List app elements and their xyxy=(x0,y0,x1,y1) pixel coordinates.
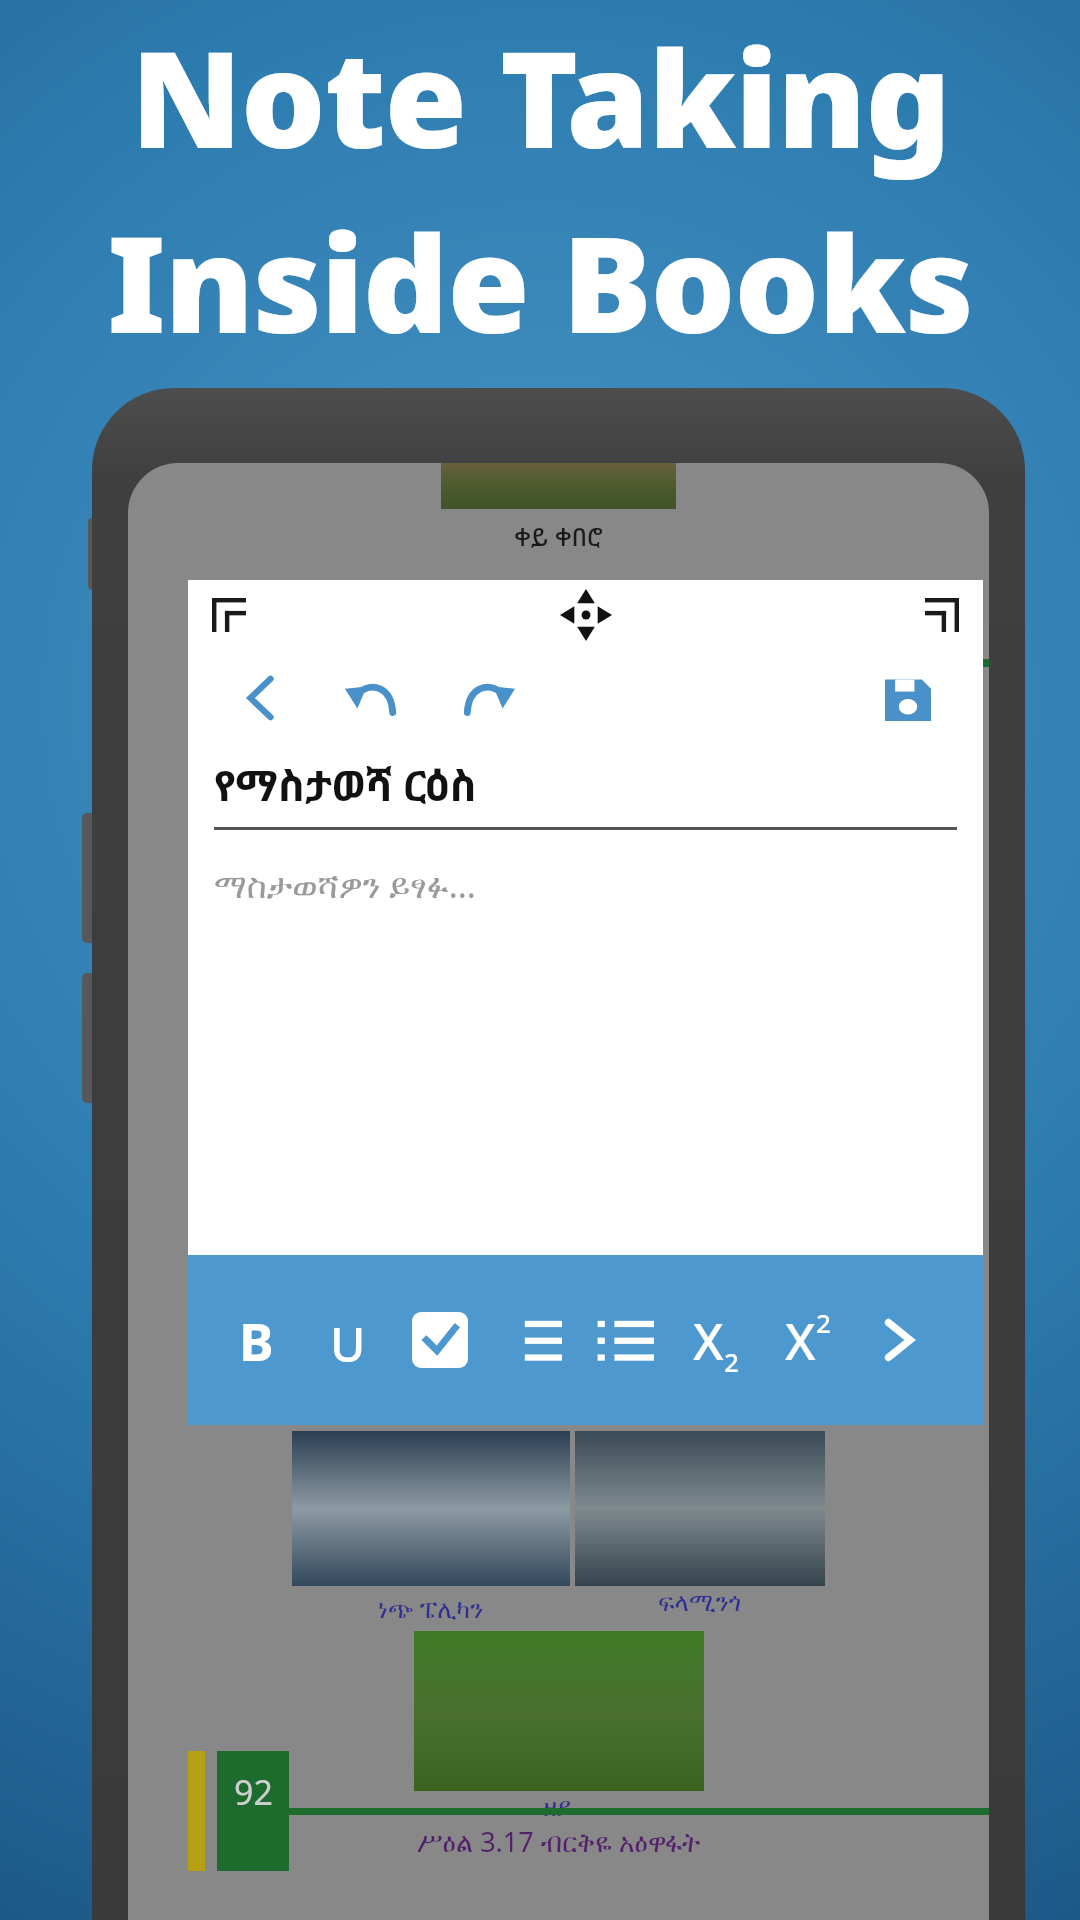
staticText: ዘይ xyxy=(543,1795,574,1821)
staticText: ሥዕል 3.17 ብርቅዬ አዕዋፋት xyxy=(417,1823,701,1860)
staticText: የማስታወሻ ርዕስ xyxy=(214,756,477,813)
staticText: Note Taking xyxy=(131,6,950,187)
button[interactable]: Undo xyxy=(330,655,416,741)
staticText: X xyxy=(785,1307,816,1373)
staticText: X xyxy=(693,1307,724,1373)
staticText: ማስታወሻዎን ይፃፉ... xyxy=(214,862,476,908)
button[interactable]: Checklist xyxy=(394,1255,486,1425)
staticText: ፍላሚንጎ xyxy=(658,1591,742,1616)
staticText: 2 xyxy=(724,1344,739,1379)
button[interactable]: Subscript xyxy=(670,1255,762,1425)
button[interactable]: Underline xyxy=(302,1255,394,1425)
staticText: ቀይ ቀበሮ xyxy=(514,519,603,553)
staticText: Inside Books xyxy=(107,191,973,372)
button[interactable]: Superscript xyxy=(762,1255,854,1425)
staticText: 2 xyxy=(816,1305,831,1340)
button[interactable]: Redo xyxy=(444,655,530,741)
button[interactable]: Save xyxy=(865,655,951,741)
staticText: U xyxy=(330,1311,366,1369)
button[interactable]: Bulleted list xyxy=(578,1255,670,1425)
staticText: B xyxy=(239,1305,274,1376)
button[interactable]: Numbered list xyxy=(486,1255,578,1425)
button[interactable]: Move dialog xyxy=(557,586,615,644)
staticText: 92 xyxy=(234,1769,273,1815)
staticText: ነጭ ፔሊካን xyxy=(378,1591,484,1625)
button[interactable]: More xyxy=(854,1255,946,1425)
button[interactable]: Bold xyxy=(210,1255,302,1425)
button[interactable]: Back xyxy=(218,655,304,741)
staticText: ሥዕል 3.17በኢትዮጵያ የሚገኙ ብርቅዬ የዱር እንስሳት xyxy=(338,575,779,651)
